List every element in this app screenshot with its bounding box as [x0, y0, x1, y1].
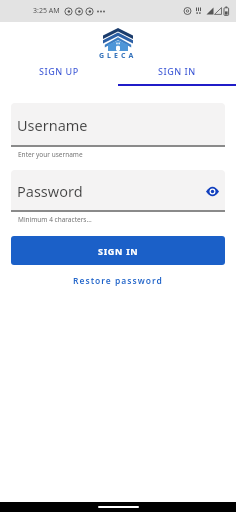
staticText: Password — [17, 181, 83, 201]
staticText: Minimum 4 characters... — [18, 215, 92, 224]
button[interactable]: Password — [11, 170, 225, 212]
staticText: Enter your username — [18, 150, 83, 159]
staticText: GLECA — [99, 51, 137, 58]
staticText: 3:25 AM — [33, 6, 60, 16]
staticText: SIGN UP — [39, 65, 79, 77]
staticText: Restore password — [73, 275, 163, 287]
staticText: Username — [17, 115, 88, 135]
button[interactable] — [205, 184, 219, 198]
button[interactable]: Username — [11, 103, 225, 147]
button[interactable]: SIGN IN — [118, 58, 236, 84]
button[interactable]: Restore password — [0, 275, 236, 287]
staticText: SIGN IN — [158, 65, 196, 77]
button[interactable]: SIGN IN — [11, 236, 225, 265]
button[interactable]: SIGN UP — [0, 58, 118, 84]
staticText: SIGN IN — [98, 245, 139, 257]
